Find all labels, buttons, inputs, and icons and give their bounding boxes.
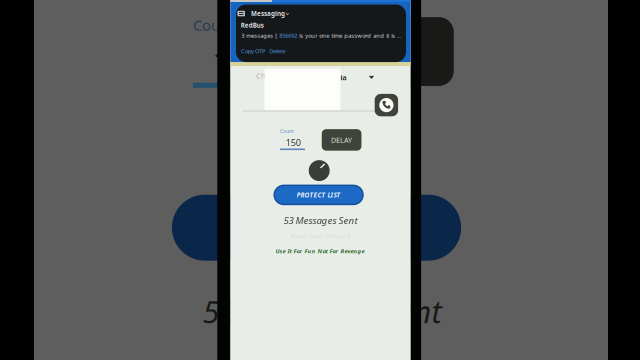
button[interactable]: Copy OTP bbox=[241, 47, 265, 55]
staticText: Please Don't Misuse It bbox=[290, 232, 351, 240]
staticText: 150 bbox=[286, 136, 301, 149]
staticText: 856692 bbox=[279, 31, 297, 39]
staticText: Delete bbox=[269, 47, 285, 55]
button[interactable]: Pick contact bbox=[375, 94, 398, 116]
staticText: 53 Messages Sent bbox=[283, 214, 357, 227]
staticText: is your one time password and it is .. bbox=[297, 31, 401, 39]
staticText: 3 messages [ bbox=[241, 31, 279, 39]
staticText: Use It For Fun Not For Revenge bbox=[275, 247, 364, 255]
staticText: 150 bbox=[212, 41, 263, 81]
button[interactable]: DELAY bbox=[322, 129, 361, 151]
button[interactable]: Send messages bbox=[309, 160, 330, 181]
button[interactable]: PROTECT LIST bbox=[273, 185, 364, 205]
button[interactable]: Delete bbox=[269, 47, 285, 55]
staticText: RedBus bbox=[241, 21, 264, 29]
staticText: PROTECT LIST bbox=[297, 190, 341, 199]
staticText: Copy OTP bbox=[241, 47, 265, 55]
staticText: DELAY bbox=[331, 135, 352, 145]
staticText: Count bbox=[280, 128, 294, 134]
staticText: ia bbox=[340, 72, 346, 82]
staticText: Ch bbox=[256, 71, 265, 81]
staticText: Cou bbox=[193, 15, 220, 35]
staticText: Messaging bbox=[251, 9, 285, 18]
staticText: 53 Messages Sent bbox=[203, 290, 442, 332]
